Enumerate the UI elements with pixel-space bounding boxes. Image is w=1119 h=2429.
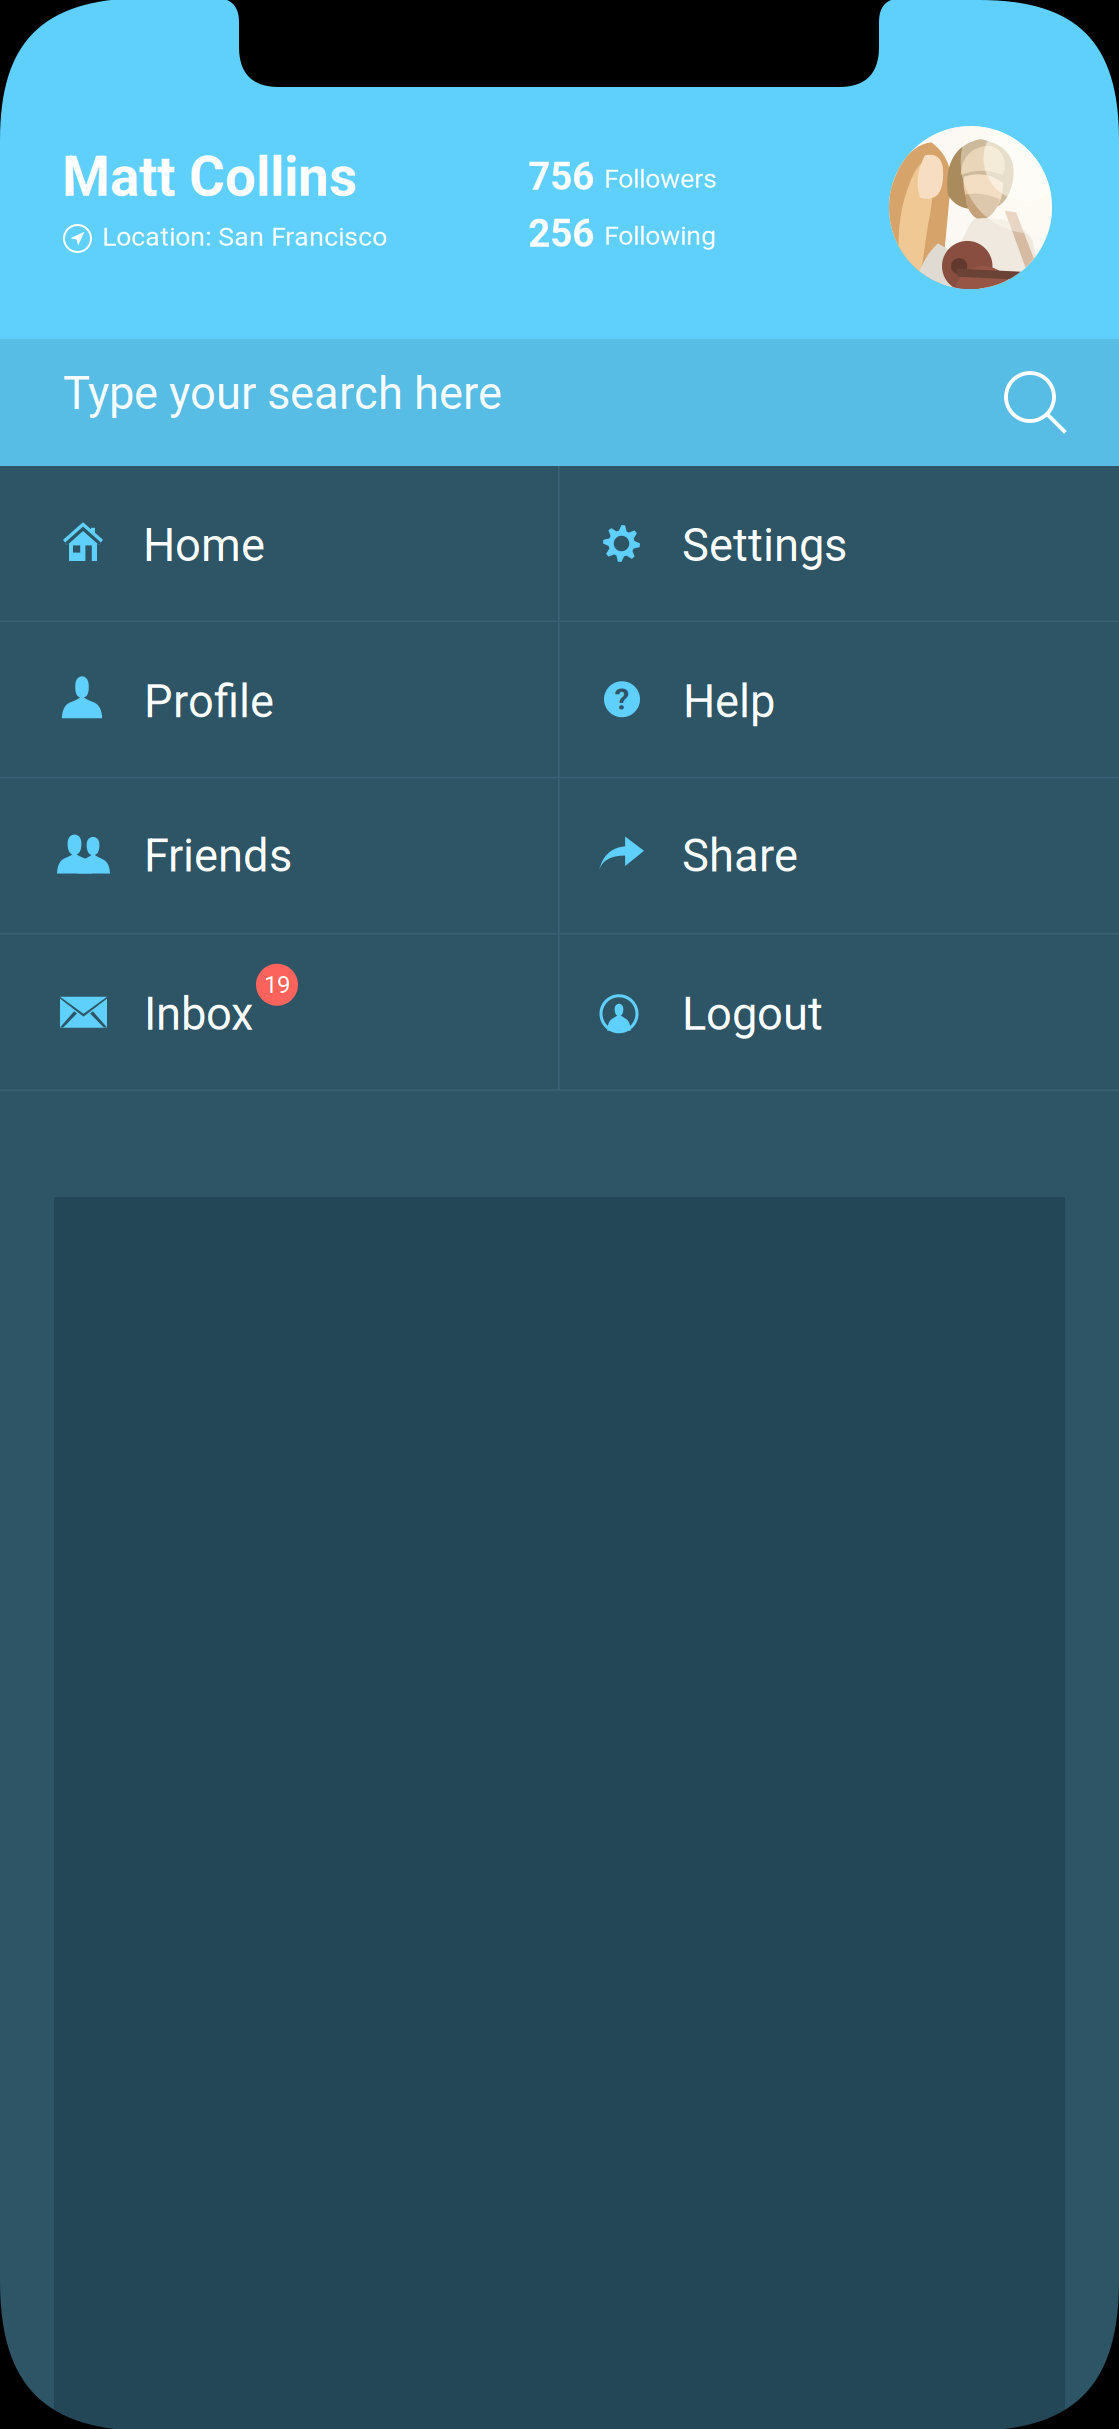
staticText: Followers (604, 163, 717, 194)
staticText: Help (683, 675, 775, 728)
staticText: Logout (682, 988, 823, 1041)
staticText: Location: San Francisco (102, 221, 387, 252)
button[interactable]: Logout (558, 935, 1119, 1091)
button[interactable]: Type your search here (0, 339, 1119, 466)
staticText: ? (614, 682, 629, 717)
button[interactable]: Inbox (0, 935, 558, 1091)
button[interactable]: Settings (558, 466, 1119, 622)
staticText: Profile (144, 675, 274, 728)
staticText: Following (604, 220, 716, 251)
staticText: Inbox (144, 988, 253, 1041)
button[interactable]: Home (0, 466, 558, 622)
button[interactable]: ? (558, 622, 1119, 778)
button[interactable]: Friends (0, 778, 558, 935)
button[interactable]: Share (558, 778, 1119, 935)
button[interactable]: Profile photo (889, 126, 1052, 289)
staticText: Home (143, 519, 265, 572)
staticText: Type your search here (63, 367, 502, 420)
staticText: Matt Collins (62, 145, 357, 209)
staticText: 256 (528, 211, 594, 256)
staticText: Settings (682, 519, 847, 572)
button[interactable]: Profile (0, 622, 558, 778)
staticText: 756 (528, 154, 594, 199)
staticText: Share (682, 829, 798, 883)
staticText: Friends (144, 829, 292, 883)
staticText: 19 (264, 971, 290, 999)
